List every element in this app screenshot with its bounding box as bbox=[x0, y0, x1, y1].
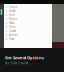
staticText: Admin bbox=[9, 33, 18, 37]
button[interactable]: Tasks bbox=[4, 21, 52, 25]
staticText: Trash bbox=[9, 37, 15, 41]
staticText: Inbox bbox=[9, 5, 17, 9]
button[interactable]: Admin bbox=[4, 33, 52, 37]
staticText: Notes bbox=[9, 17, 17, 21]
button[interactable]: Sent bbox=[4, 13, 52, 17]
staticText: Teams bbox=[9, 29, 16, 33]
staticText: Get Several Options bbox=[5, 55, 44, 60]
button[interactable]: Files bbox=[4, 25, 52, 29]
button[interactable]: Drafts bbox=[4, 9, 52, 13]
button[interactable]: Teams bbox=[4, 29, 52, 33]
button[interactable]: Notes bbox=[4, 17, 52, 21]
staticText: Drafts bbox=[9, 9, 16, 13]
button[interactable]: Inbox bbox=[4, 5, 52, 9]
staticText: Tasks bbox=[9, 21, 14, 25]
staticText: Sent bbox=[9, 13, 15, 17]
staticText: Files bbox=[9, 25, 15, 29]
button[interactable]: Trash bbox=[4, 37, 52, 41]
staticText: See how it works bbox=[5, 61, 28, 65]
